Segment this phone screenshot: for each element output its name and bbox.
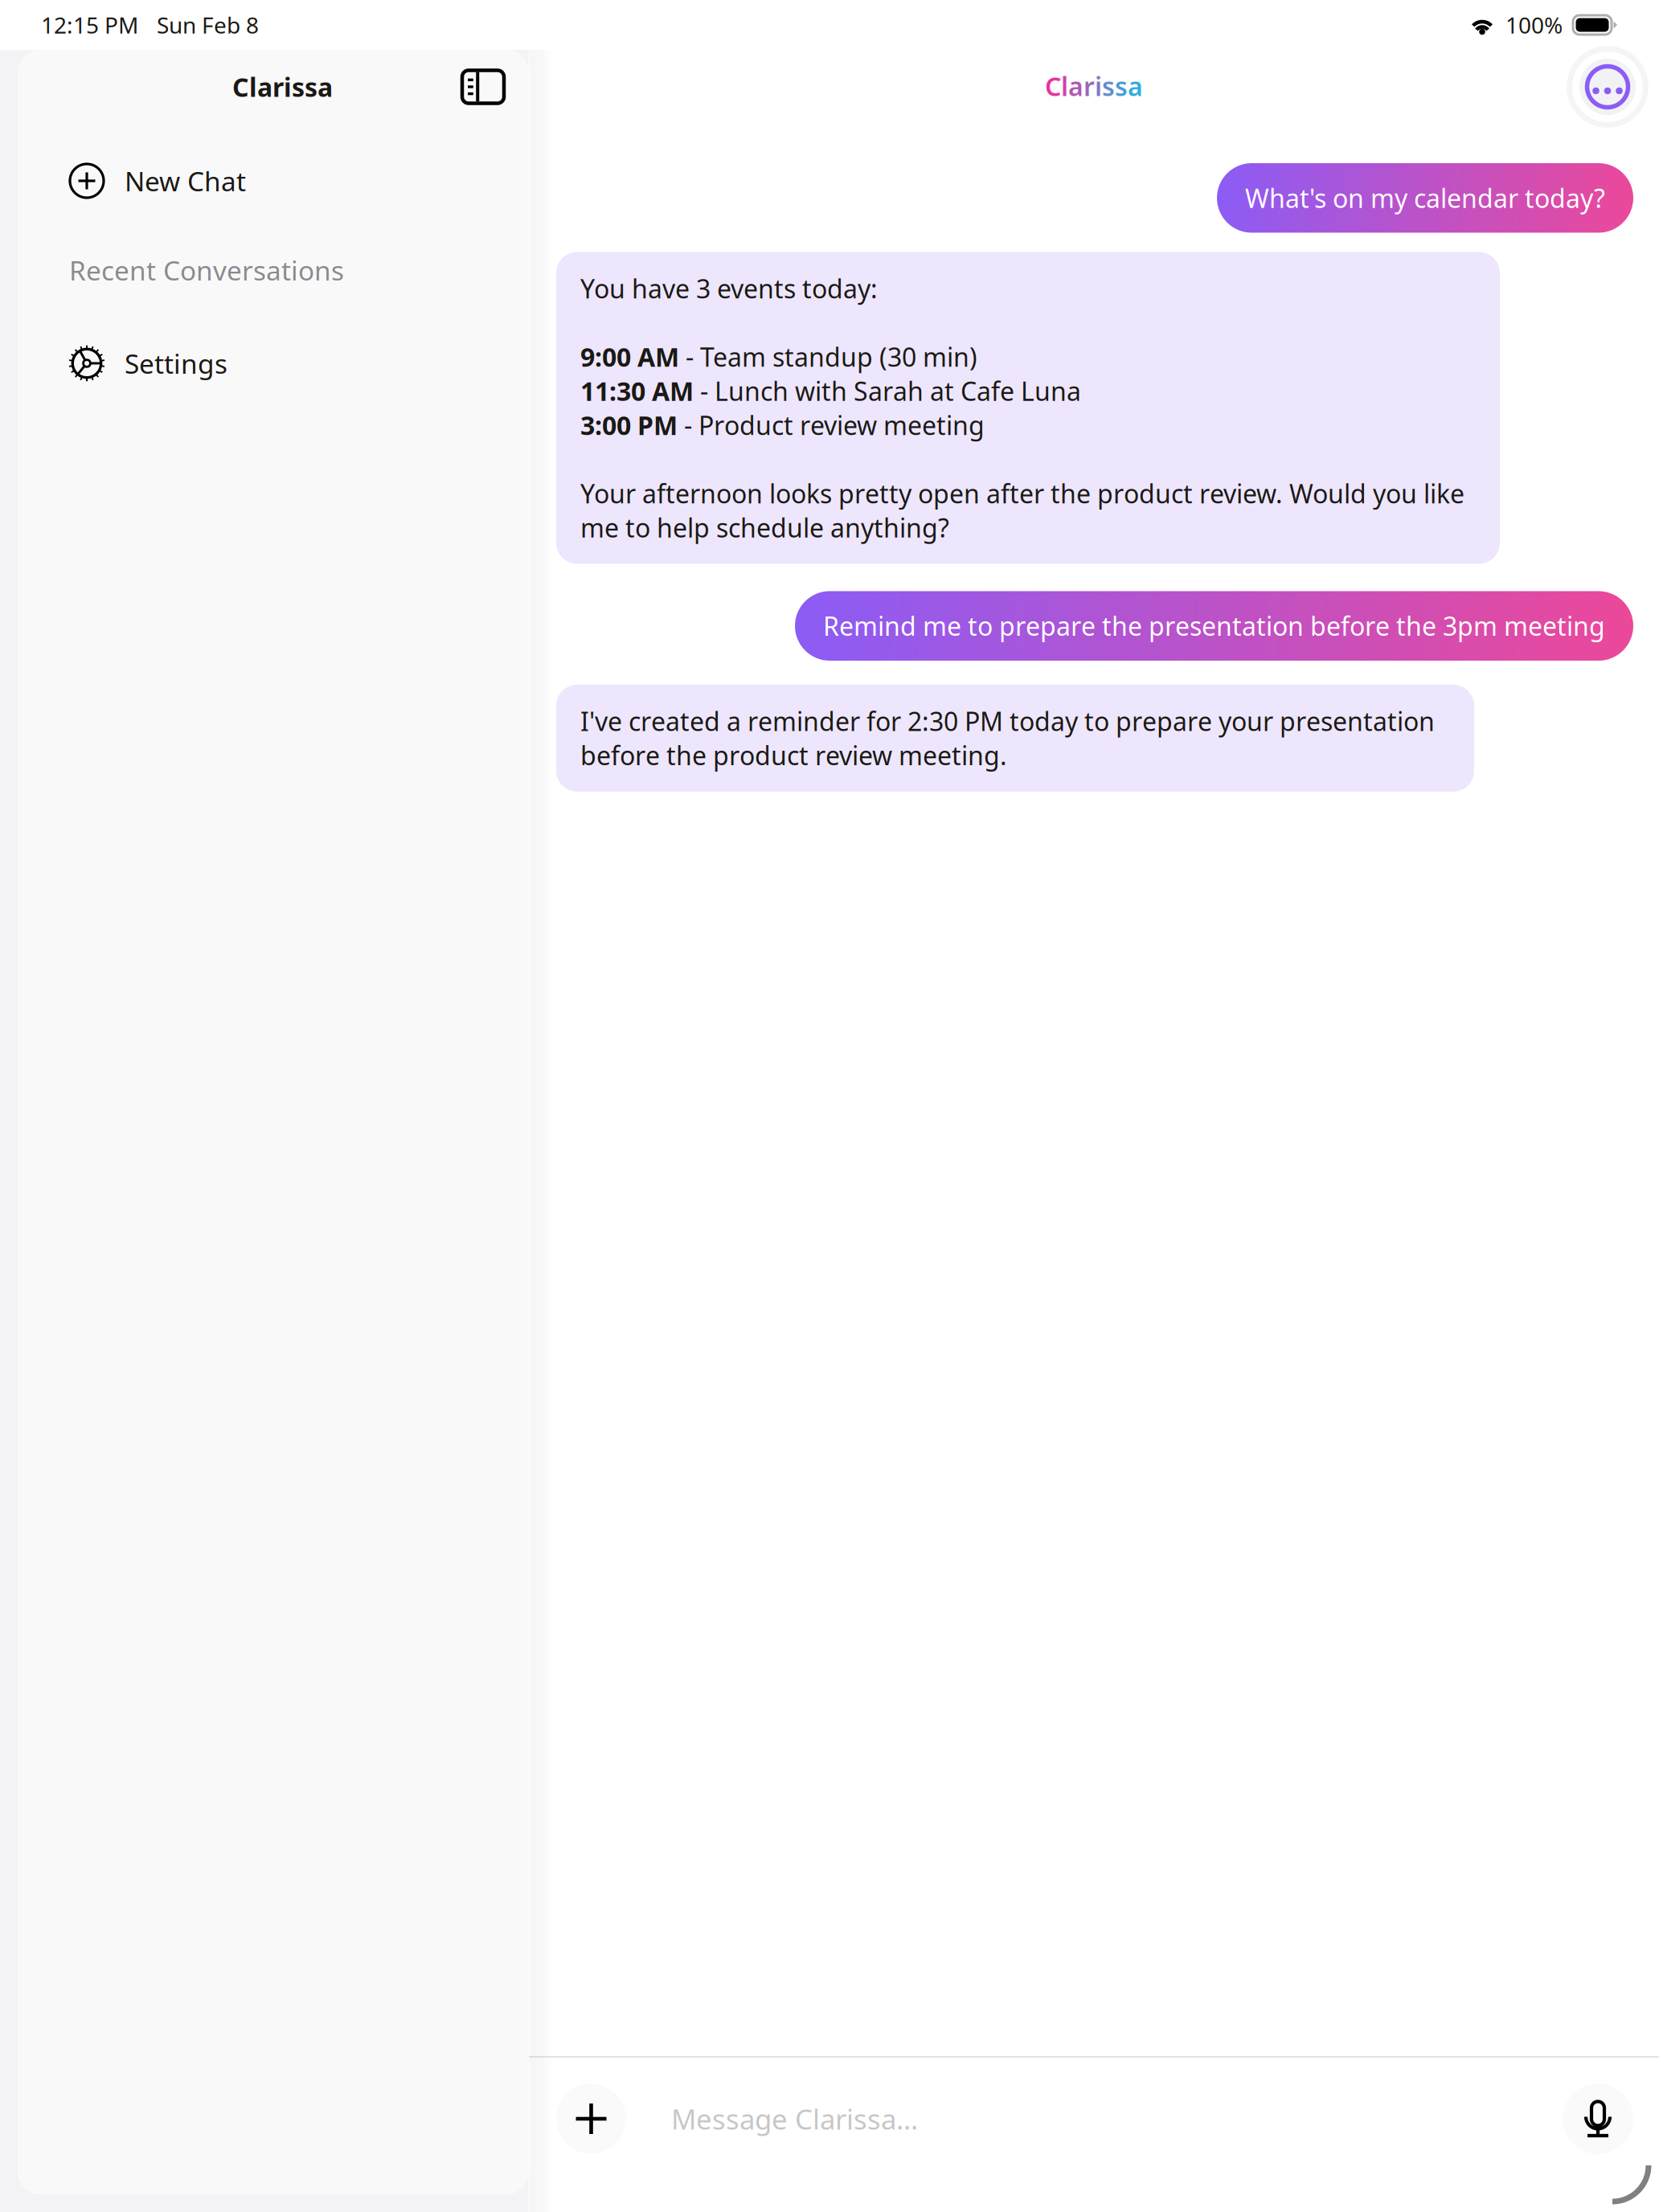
button[interactable]: Toggle Sidebar [446, 55, 520, 119]
staticText: a [1128, 69, 1143, 103]
staticText: s [1102, 69, 1115, 103]
staticText: Clarissa [232, 70, 333, 104]
staticText: New Chat [125, 163, 246, 199]
staticText: C [1045, 69, 1061, 103]
staticText: 11:30 AM - Lunch with Sarah at Cafe Luna [580, 374, 1081, 408]
button[interactable]: Add attachment [556, 2084, 626, 2154]
staticText: 3:00 PM - Product review meeting [580, 408, 985, 442]
button[interactable]: New Chat [18, 147, 529, 215]
staticText: i [1095, 69, 1102, 103]
staticText: Sun Feb 8 [157, 10, 259, 40]
button[interactable]: Dictate [1563, 2083, 1633, 2154]
staticText: a [1068, 69, 1083, 103]
button[interactable]: Recent Conversations [18, 246, 529, 294]
staticText: Recent Conversations [69, 252, 344, 288]
staticText: I've created a reminder for 2:30 PM toda… [580, 704, 1435, 772]
staticText: Message Clarissa... [671, 2100, 918, 2137]
staticText: 12:15 PM [41, 10, 138, 40]
staticText: Settings [125, 346, 227, 381]
staticText: 9:00 AM - Team standup (30 min) [580, 340, 977, 374]
staticText: l [1061, 69, 1068, 103]
staticText: r [1083, 69, 1095, 103]
staticText: Remind me to prepare the presentation be… [823, 609, 1605, 643]
button[interactable]: More options [1564, 43, 1651, 130]
staticText: 100% [1505, 10, 1563, 40]
staticText: You have 3 events today: [580, 271, 878, 305]
staticText: s [1115, 69, 1128, 103]
staticText: Your afternoon looks pretty open after t… [580, 476, 1464, 545]
staticText: What's on my calendar today? [1245, 181, 1605, 215]
button[interactable]: Settings [18, 330, 529, 397]
